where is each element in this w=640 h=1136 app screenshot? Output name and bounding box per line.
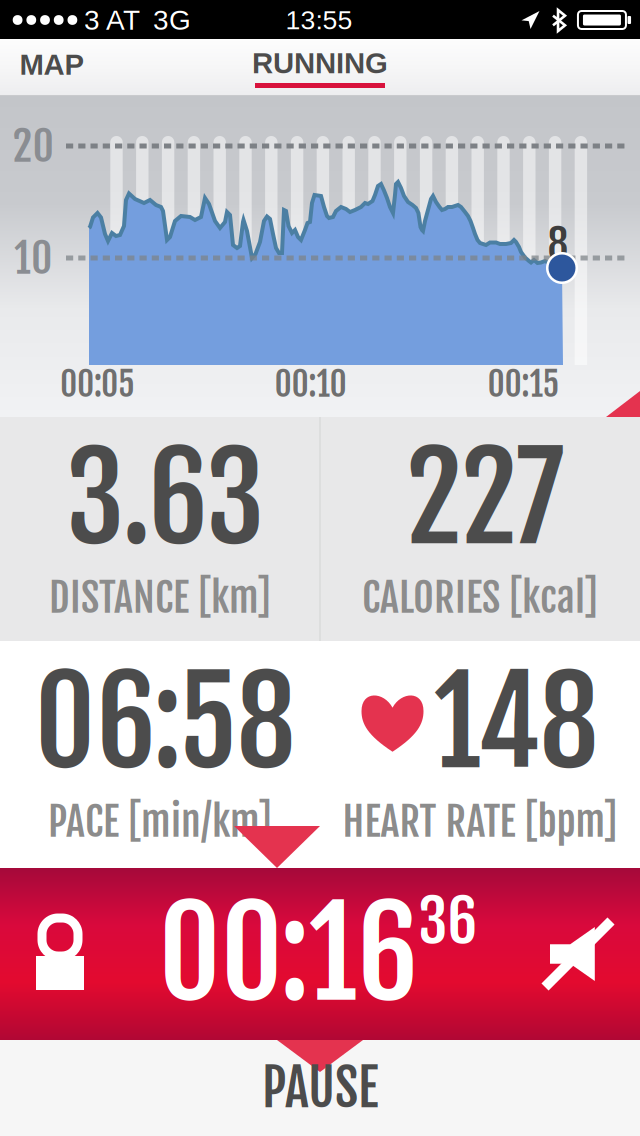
- staticText: 00:05: [60, 363, 135, 405]
- button[interactable]: MAP: [0, 39, 104, 90]
- staticText: 10: [14, 232, 52, 284]
- staticText: 148: [433, 649, 598, 796]
- staticText: 36: [418, 885, 477, 958]
- staticText: 3 AT: [84, 4, 140, 36]
- button[interactable]: Lock: [20, 911, 100, 997]
- staticText: PAUSE: [262, 1056, 378, 1120]
- button[interactable]: PAUSE: [0, 1040, 640, 1136]
- staticText: 3.63: [66, 425, 263, 572]
- staticText: 06:58: [34, 649, 295, 796]
- staticText: 13:55: [285, 5, 352, 35]
- staticText: CALORIES [kcal]: [362, 572, 598, 623]
- button[interactable]: RUNNING: [235, 39, 405, 96]
- staticText: 8: [547, 218, 568, 270]
- staticText: 227: [406, 425, 564, 572]
- staticText: 00:16: [158, 879, 418, 1029]
- staticText: 00:15: [487, 363, 559, 405]
- staticText: DISTANCE [km]: [49, 572, 271, 623]
- staticText: 00:10: [274, 363, 346, 405]
- staticText: 3G: [153, 4, 191, 36]
- staticText: PACE [min/km]: [48, 796, 272, 847]
- staticText: 20: [12, 120, 53, 172]
- staticText: HEART RATE [bpm]: [342, 796, 617, 847]
- staticText: MAP: [19, 48, 84, 81]
- button[interactable]: Mute: [536, 911, 620, 997]
- staticText: RUNNING: [252, 47, 388, 79]
